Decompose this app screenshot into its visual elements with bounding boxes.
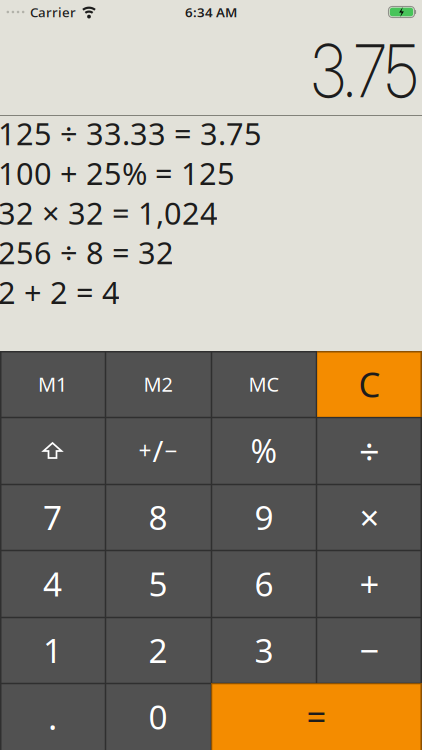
button[interactable]: 7 [0, 484, 105, 550]
button[interactable]: 2 [105, 617, 211, 683]
staticText: 6 [254, 561, 273, 606]
button[interactable]: M2 [105, 351, 211, 417]
staticText: 3 [254, 628, 273, 672]
staticText: . [48, 693, 57, 739]
button[interactable]: 6 [211, 550, 317, 617]
button[interactable]: % [211, 417, 317, 484]
button[interactable]: Plus/Minus [105, 417, 211, 484]
staticText: + [359, 560, 379, 606]
staticText: 256 ÷ 8 = 32 [0, 232, 174, 273]
staticText: − [164, 435, 177, 465]
staticText: 8 [148, 495, 167, 539]
button[interactable]: Shift [0, 417, 105, 484]
button[interactable]: C [317, 351, 422, 417]
staticText: Carrier [30, 3, 76, 21]
staticText: × [359, 494, 379, 540]
staticText: 125 ÷ 33.33 = 3.75 [0, 113, 262, 154]
staticText: = [306, 693, 326, 739]
staticText: 2 + 2 = 4 [0, 272, 120, 312]
button[interactable]: ÷ [317, 417, 422, 484]
button[interactable]: 0 [105, 683, 211, 750]
button[interactable]: 5 [105, 550, 211, 617]
staticText: 1 [43, 628, 62, 672]
button[interactable]: − [317, 617, 422, 683]
button[interactable]: × [317, 484, 422, 550]
staticText: 3.75 [291, 26, 418, 115]
staticText: + [138, 435, 151, 465]
button[interactable]: 3 [211, 617, 317, 683]
staticText: 4 [43, 561, 62, 606]
staticText: 6:34 AM [185, 3, 237, 21]
button[interactable]: 1 [0, 617, 105, 683]
button[interactable]: M1 [0, 351, 105, 417]
staticText: M2 [143, 371, 172, 397]
staticText: MC [248, 371, 279, 397]
staticText: 32 × 32 = 1,024 [0, 192, 218, 233]
staticText: M1 [38, 371, 67, 397]
staticText: 2 [148, 628, 167, 672]
staticText: / [152, 431, 163, 470]
button[interactable]: + [317, 550, 422, 617]
button[interactable]: MC [211, 351, 317, 417]
button[interactable]: = [211, 683, 422, 750]
staticText: 0 [148, 694, 167, 739]
staticText: − [359, 627, 379, 673]
button[interactable]: . [0, 683, 105, 750]
button[interactable]: 9 [211, 484, 317, 550]
staticText: 5 [148, 561, 167, 606]
staticText: 9 [254, 495, 273, 539]
button[interactable]: 4 [0, 550, 105, 617]
staticText: ÷ [359, 427, 380, 474]
staticText: % [250, 429, 277, 472]
staticText: 100 + 25% = 125 [0, 153, 235, 193]
staticText: 7 [43, 495, 62, 539]
button[interactable]: 8 [105, 484, 211, 550]
staticText: C [358, 361, 380, 407]
